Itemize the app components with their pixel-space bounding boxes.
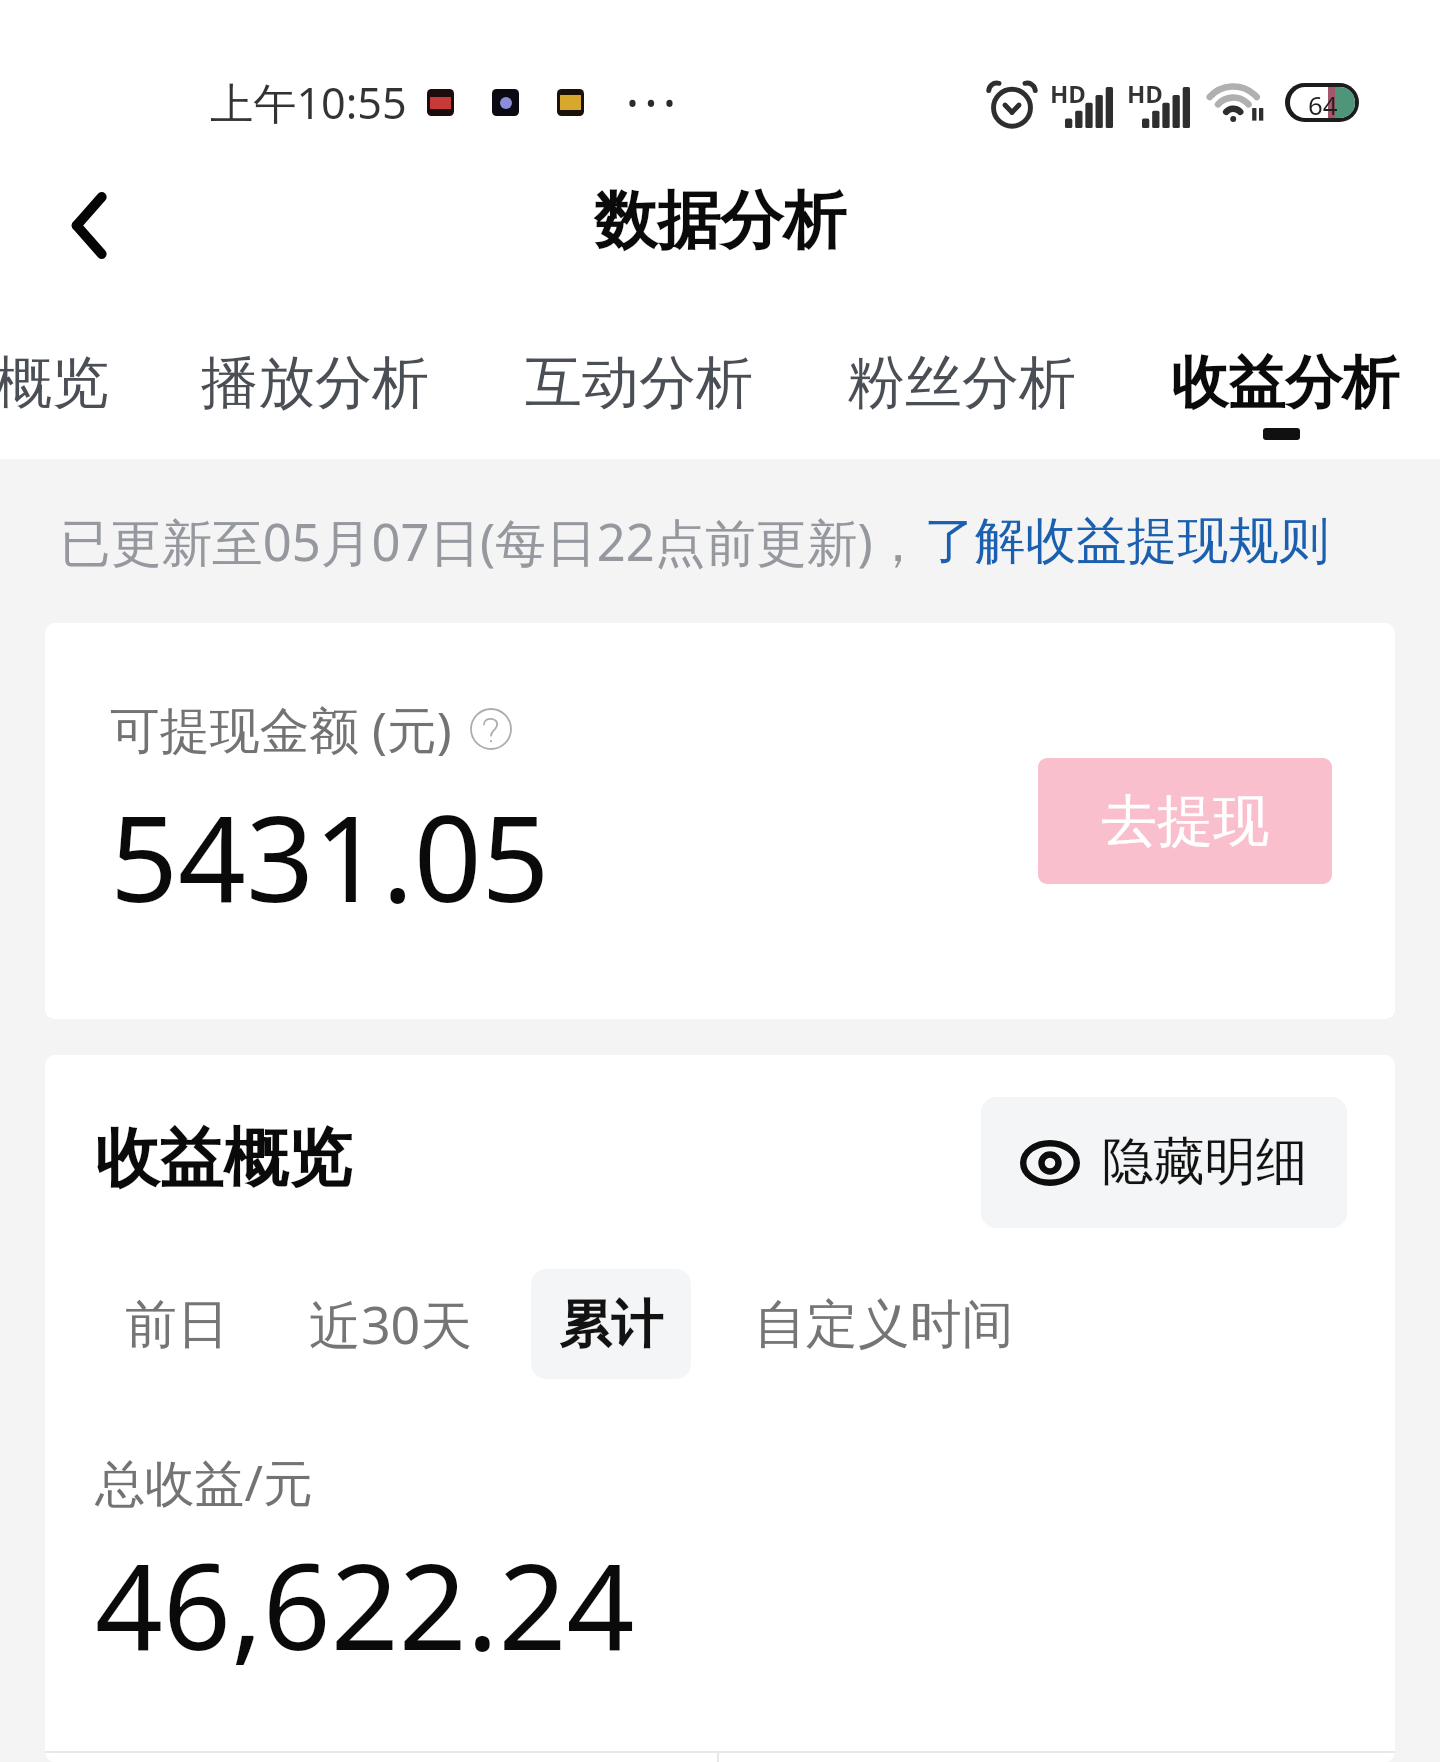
staticText: 互动分析 [525,347,753,419]
staticText: HD [1127,77,1163,110]
staticText: 去提现 [1101,786,1270,857]
button[interactable]: 播放分析 [201,300,429,453]
button[interactable]: 粉丝分析 [848,300,1076,453]
staticText: 已更新至05月07日(每日22点前更新)， [60,507,924,576]
staticText: 上午10:55 [210,73,407,132]
staticText: 收益分析 [1171,347,1399,419]
staticText: 46,622.24 [95,1523,635,1685]
staticText: 前日 [125,1292,229,1357]
staticText: 累计 [559,1292,663,1357]
button[interactable]: 隐藏明细 [981,1097,1347,1228]
staticText: 播放分析 [201,347,429,419]
button[interactable]: 互动分析 [525,300,753,453]
staticText: 数据分析 [594,181,846,260]
button[interactable]: 去提现 [1038,758,1332,884]
staticText: 5431.05 [110,775,550,937]
staticText: 粉丝分析 [848,347,1076,419]
button[interactable]: 收益分析 [1171,300,1399,453]
staticText: • • • [627,83,675,123]
button[interactable]: 前日 [125,1269,229,1379]
staticText: 可提现金额 (元) [110,695,452,763]
staticText: 收益概览 [95,1118,352,1199]
button[interactable]: 近30天 [309,1269,473,1379]
button[interactable]: 累计 [531,1269,691,1379]
button[interactable]: 了解收益提现规则 [924,509,1330,573]
staticText: 概览 [0,347,109,419]
button[interactable]: 自定义时间 [754,1269,1014,1379]
staticText: 隐藏明细 [1102,1130,1308,1195]
button[interactable]: Help [470,708,512,750]
button[interactable]: Back [21,158,156,293]
button[interactable]: 概览 [0,300,109,453]
staticText: 自定义时间 [754,1292,1014,1357]
staticText: 64 [1308,87,1338,118]
staticText: 总收益/元 [95,1448,313,1516]
staticText: HD [1050,77,1086,110]
staticText: 近30天 [309,1289,473,1360]
